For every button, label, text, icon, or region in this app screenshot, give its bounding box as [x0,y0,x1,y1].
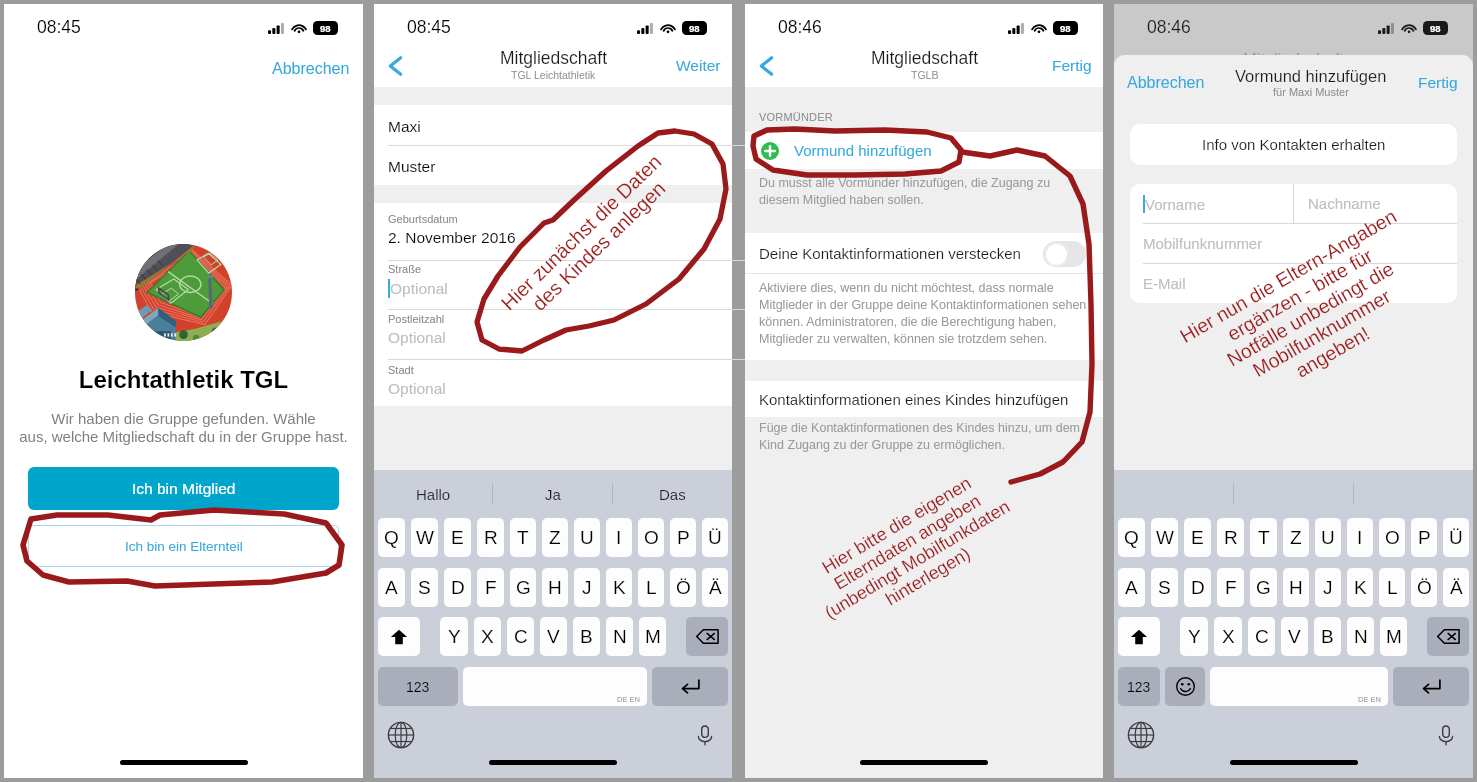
button[interactable]: Ja [493,470,612,518]
button[interactable]: Ä [1443,568,1469,607]
button[interactable]: X [1214,617,1242,656]
button[interactable]: 123 [1118,667,1160,706]
button[interactable]: S [411,568,438,607]
button[interactable]: 123 [378,667,458,706]
button[interactable]: B [1314,617,1341,656]
button[interactable]: D [1184,568,1211,607]
staticText: 98 [1060,23,1071,34]
button[interactable]: B [573,617,600,656]
button[interactable]: A [1118,568,1145,607]
button[interactable]: A [378,568,405,607]
button[interactable]: Z [542,518,568,557]
button[interactable]: Fertig [1044,51,1103,80]
button[interactable]: W [411,518,438,557]
button[interactable]: Mobilfunknummer [1130,224,1457,263]
button[interactable]: R [1217,518,1244,557]
button[interactable]: Kontaktinformationen eines Kindes hinzuf… [745,381,1103,417]
button[interactable]: Q [1118,518,1145,557]
button[interactable]: W [1151,518,1178,557]
button[interactable]: Umschalttaste [378,617,420,656]
button[interactable]: Leertaste [463,667,647,706]
button[interactable]: Diktieren [690,720,720,750]
button[interactable]: J [1315,568,1341,607]
button[interactable]: Ü [1443,518,1469,557]
button[interactable]: Eingabe [1393,667,1469,706]
button[interactable]: E [1184,518,1211,557]
button[interactable]: L [638,568,664,607]
button[interactable]: T [510,518,536,557]
button[interactable]: R [477,518,504,557]
button[interactable]: I [1347,518,1373,557]
button[interactable]: P [1411,518,1437,557]
button[interactable]: Löschen [1427,617,1469,656]
button[interactable]: G [1250,568,1277,607]
button[interactable]: H [1283,568,1309,607]
button[interactable]: U [574,518,600,557]
button[interactable]: Diktieren [1431,720,1461,750]
button[interactable]: J [574,568,600,607]
staticText: M [1386,626,1402,647]
button[interactable]: Ich bin ein Elternteil [28,525,339,567]
button[interactable]: M [1380,617,1407,656]
button[interactable]: Leertaste [1210,667,1388,706]
button[interactable]: Y [440,617,468,656]
button[interactable]: Vorname [1130,184,1293,223]
button[interactable]: C [507,617,534,656]
button[interactable]: O [638,518,664,557]
button[interactable]: L [1379,568,1405,607]
button[interactable]: K [1347,568,1373,607]
button[interactable]: O [1379,518,1405,557]
button[interactable]: Sprache wechseln [386,720,416,750]
button[interactable]: Sprache wechseln [1126,720,1156,750]
button[interactable]: E [444,518,471,557]
button[interactable]: Deine Kontaktinformationen verstecken [745,233,1103,274]
button[interactable]: Eingabe [652,667,728,706]
button[interactable]: K [606,568,632,607]
button[interactable]: S [1151,568,1178,607]
button[interactable]: Fertig [1410,72,1473,97]
button[interactable]: Ü [702,518,728,557]
button[interactable]: X [474,617,501,656]
button[interactable]: Q [378,518,405,557]
button[interactable]: G [510,568,536,607]
button[interactable]: F [1217,568,1244,607]
button[interactable]: Löschen [686,617,728,656]
button[interactable]: Info von Kontakten erhalten [1130,124,1457,165]
button[interactable]: T [1250,518,1277,557]
button[interactable]: M [639,617,666,656]
button[interactable]: Abbrechen [1114,72,1213,98]
button[interactable]: Ö [1411,568,1437,607]
button[interactable]: Umschalttaste [1118,617,1160,656]
button[interactable]: D [444,568,471,607]
button[interactable]: Abbrechen [262,55,360,83]
staticText: A [1125,577,1138,598]
staticText: Elterndaten angeben [831,490,985,594]
button[interactable]: N [606,617,633,656]
button[interactable]: Nachname [1294,184,1457,223]
button[interactable]: Vormund hinzufügen [745,132,1103,169]
button[interactable]: Zurück [755,52,783,80]
button[interactable]: N [1347,617,1374,656]
button[interactable]: Kontaktinformationen verstecken umschalt… [1043,241,1086,267]
button[interactable]: Y [1180,617,1208,656]
button[interactable]: Hallo [374,470,492,518]
button[interactable]: P [670,518,696,557]
button[interactable]: U [1315,518,1341,557]
button[interactable]: F [477,568,504,607]
button[interactable]: Zurück [384,52,412,80]
button[interactable]: Ö [670,568,696,607]
button[interactable]: Emoji [1165,667,1205,706]
button[interactable]: I [606,518,632,557]
button[interactable]: E-Mail [1130,264,1457,303]
staticText: 08:45 [37,17,81,37]
button[interactable]: H [542,568,568,607]
button[interactable]: Z [1283,518,1309,557]
button[interactable]: V [1281,617,1308,656]
button[interactable]: V [540,617,567,656]
button[interactable]: Ä [702,568,728,607]
button[interactable]: Ich bin Mitglied [28,467,339,510]
button[interactable]: Das [613,470,732,518]
staticText: 08:46 [1147,17,1191,37]
button[interactable]: Weiter [668,51,732,80]
button[interactable]: C [1248,617,1275,656]
